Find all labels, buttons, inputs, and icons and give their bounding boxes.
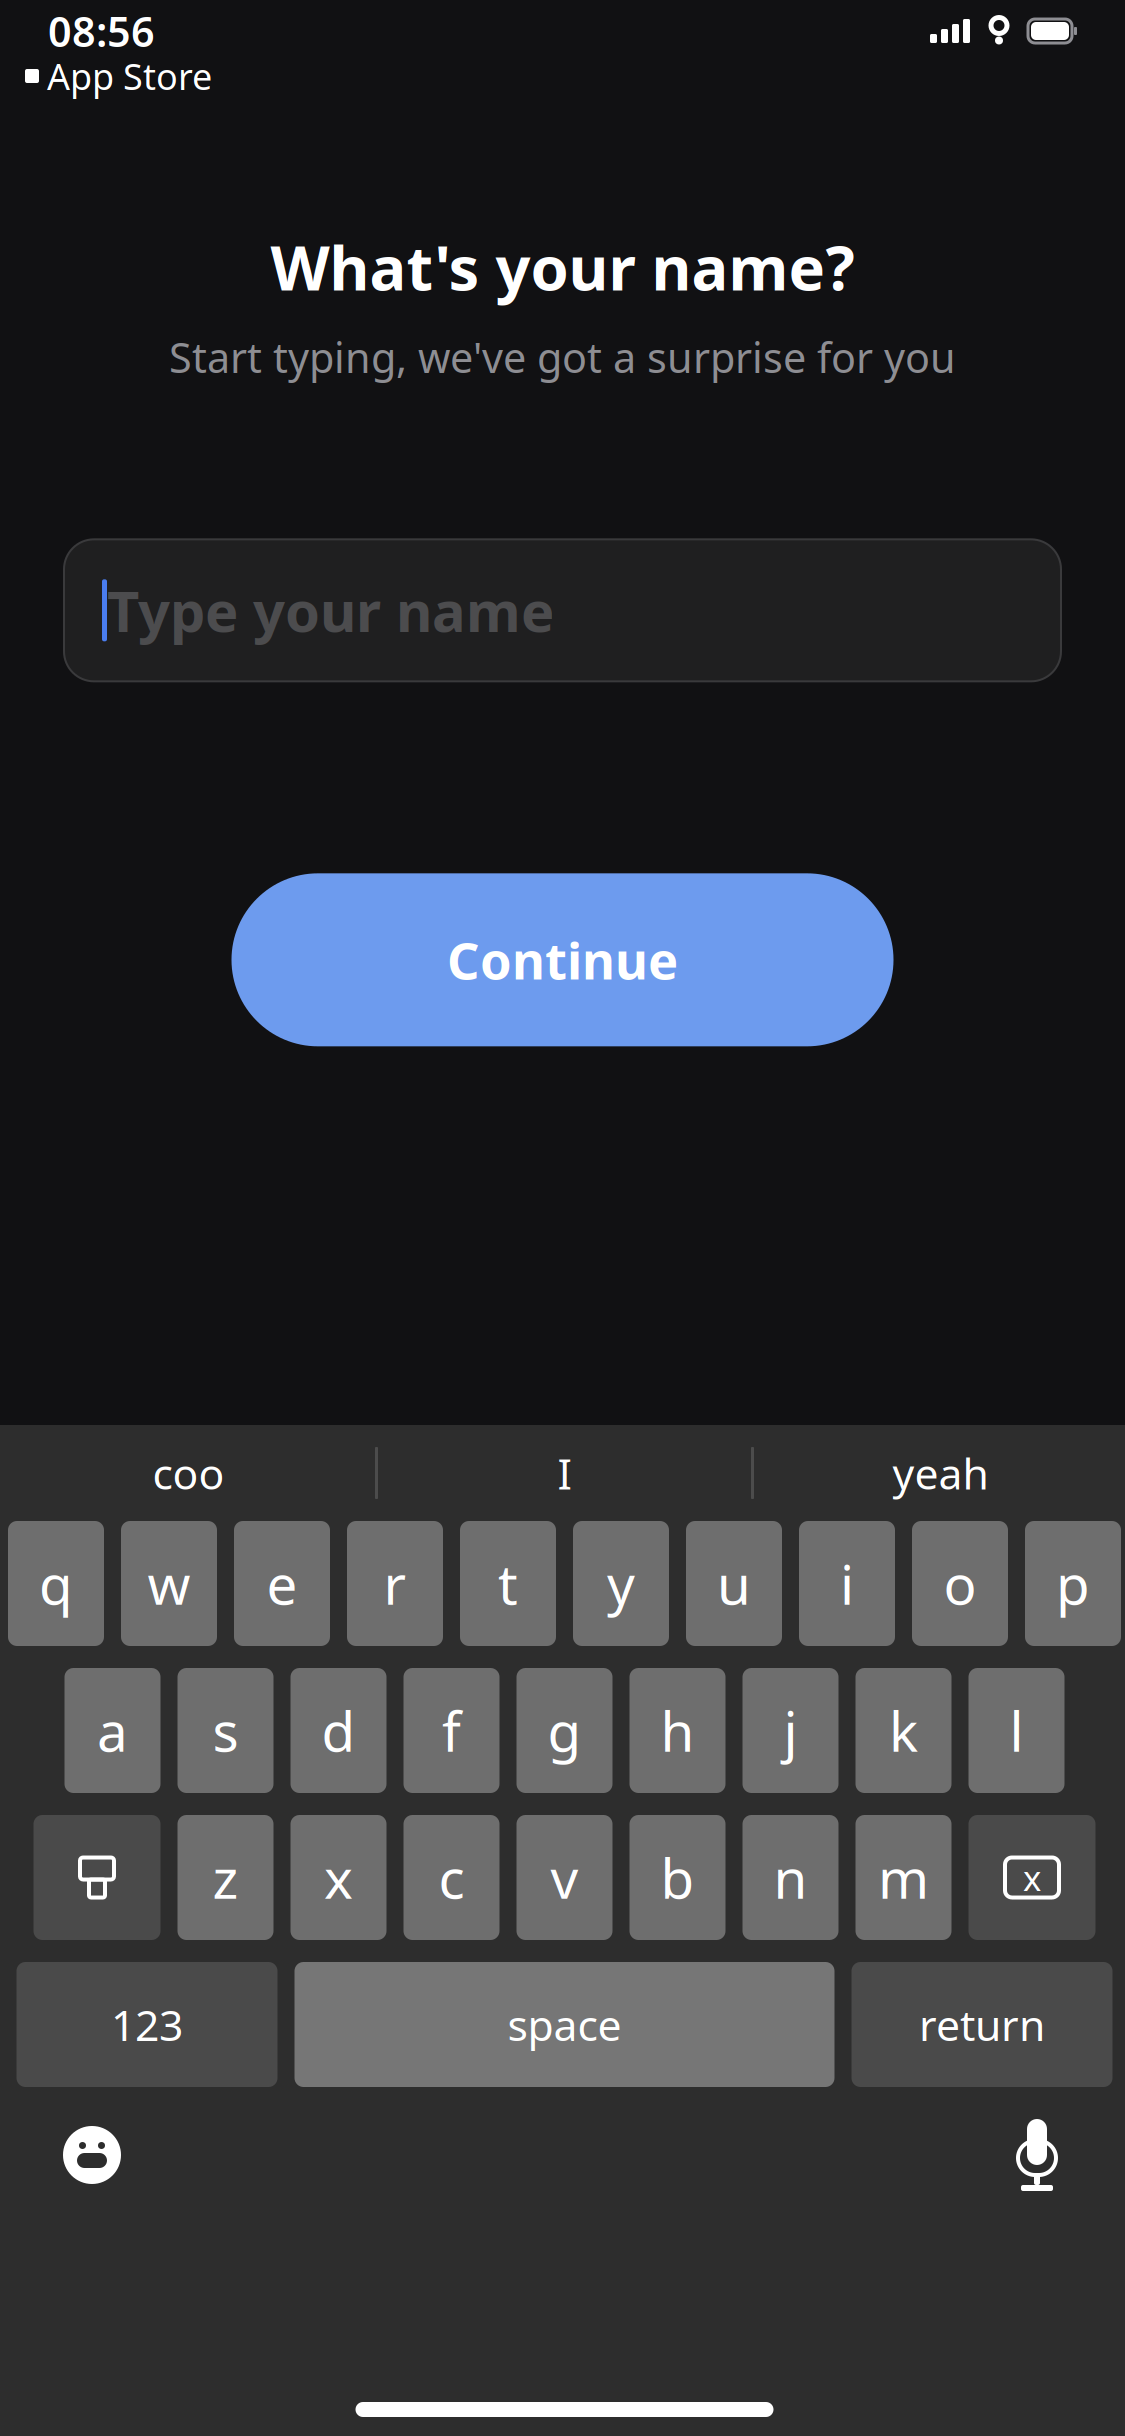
button[interactable]: k: [855, 1668, 951, 1793]
staticText: g: [547, 1694, 581, 1767]
staticText: u: [717, 1547, 751, 1620]
staticText: space: [507, 1996, 621, 2053]
button[interactable]: e: [234, 1521, 330, 1646]
staticText: z: [212, 1841, 238, 1914]
staticText: h: [660, 1694, 694, 1767]
staticText: I: [557, 1445, 571, 1501]
button[interactable]: d: [290, 1668, 386, 1793]
button[interactable]: l: [968, 1668, 1064, 1793]
staticText: b: [660, 1841, 694, 1914]
staticText: v: [550, 1841, 578, 1914]
button[interactable]: s: [177, 1668, 273, 1793]
staticText: n: [773, 1841, 807, 1914]
button[interactable]: v: [516, 1815, 612, 1940]
staticText: l: [1009, 1694, 1023, 1767]
staticText: e: [266, 1547, 297, 1620]
staticText: return: [919, 1996, 1045, 2053]
button[interactable]: 123: [16, 1962, 277, 2087]
button[interactable]: I: [378, 1425, 751, 1521]
button[interactable]: yeah: [754, 1425, 1125, 1521]
staticText: w: [147, 1547, 190, 1620]
button[interactable]: App Store: [0, 56, 236, 96]
button[interactable]: r: [347, 1521, 443, 1646]
button[interactable]: y: [573, 1521, 669, 1646]
button[interactable]: f: [403, 1668, 499, 1793]
button[interactable]: i: [799, 1521, 895, 1646]
staticText: coo: [152, 1445, 224, 1501]
staticText: 123: [111, 1996, 183, 2053]
button[interactable]: j: [742, 1668, 838, 1793]
staticText: Type your name: [107, 573, 554, 648]
button[interactable]: Continue: [231, 873, 893, 1046]
staticText: x: [324, 1841, 353, 1914]
button[interactable]: g: [516, 1668, 612, 1793]
button[interactable]: w: [121, 1521, 217, 1646]
staticText: f: [442, 1694, 461, 1767]
staticText: m: [878, 1841, 929, 1914]
button[interactable]: coo: [2, 1425, 375, 1521]
staticText: p: [1056, 1547, 1090, 1620]
button[interactable]: Type your name: [0, 539, 1125, 681]
staticText: Start typing, we've got a surprise for y…: [169, 329, 956, 384]
button[interactable]: b: [629, 1815, 725, 1940]
staticText: App Store: [47, 52, 212, 100]
button[interactable]: q: [8, 1521, 104, 1646]
staticText: j: [783, 1694, 797, 1767]
staticText: i: [840, 1547, 854, 1620]
button[interactable]: Delete: [968, 1815, 1095, 1940]
staticText: x: [1023, 1854, 1041, 1900]
staticText: q: [39, 1547, 73, 1620]
button[interactable]: m: [855, 1815, 951, 1940]
staticText: o: [943, 1547, 976, 1620]
staticText: c: [438, 1841, 464, 1914]
staticText: d: [321, 1694, 355, 1767]
staticText: 08:56: [48, 4, 155, 58]
staticText: yeah: [892, 1445, 988, 1501]
button[interactable]: t: [460, 1521, 556, 1646]
button[interactable]: z: [177, 1815, 273, 1940]
button[interactable]: o: [912, 1521, 1008, 1646]
button[interactable]: Shift: [33, 1815, 160, 1940]
button[interactable]: u: [686, 1521, 782, 1646]
button[interactable]: x: [290, 1815, 386, 1940]
button[interactable]: a: [64, 1668, 160, 1793]
button[interactable]: return: [851, 1962, 1112, 2087]
staticText: y: [607, 1547, 635, 1620]
button[interactable]: c: [403, 1815, 499, 1940]
staticText: a: [97, 1694, 128, 1767]
button[interactable]: h: [629, 1668, 725, 1793]
staticText: What's your name?: [270, 226, 854, 307]
staticText: k: [889, 1694, 918, 1767]
button[interactable]: Dictation: [992, 2105, 1082, 2205]
button[interactable]: n: [742, 1815, 838, 1940]
staticText: r: [383, 1547, 406, 1620]
staticText: t: [498, 1547, 518, 1620]
staticText: Continue: [447, 926, 678, 993]
button[interactable]: Emoji: [47, 2110, 137, 2200]
staticText: s: [212, 1694, 238, 1767]
button[interactable]: space: [294, 1962, 834, 2087]
button[interactable]: p: [1025, 1521, 1121, 1646]
